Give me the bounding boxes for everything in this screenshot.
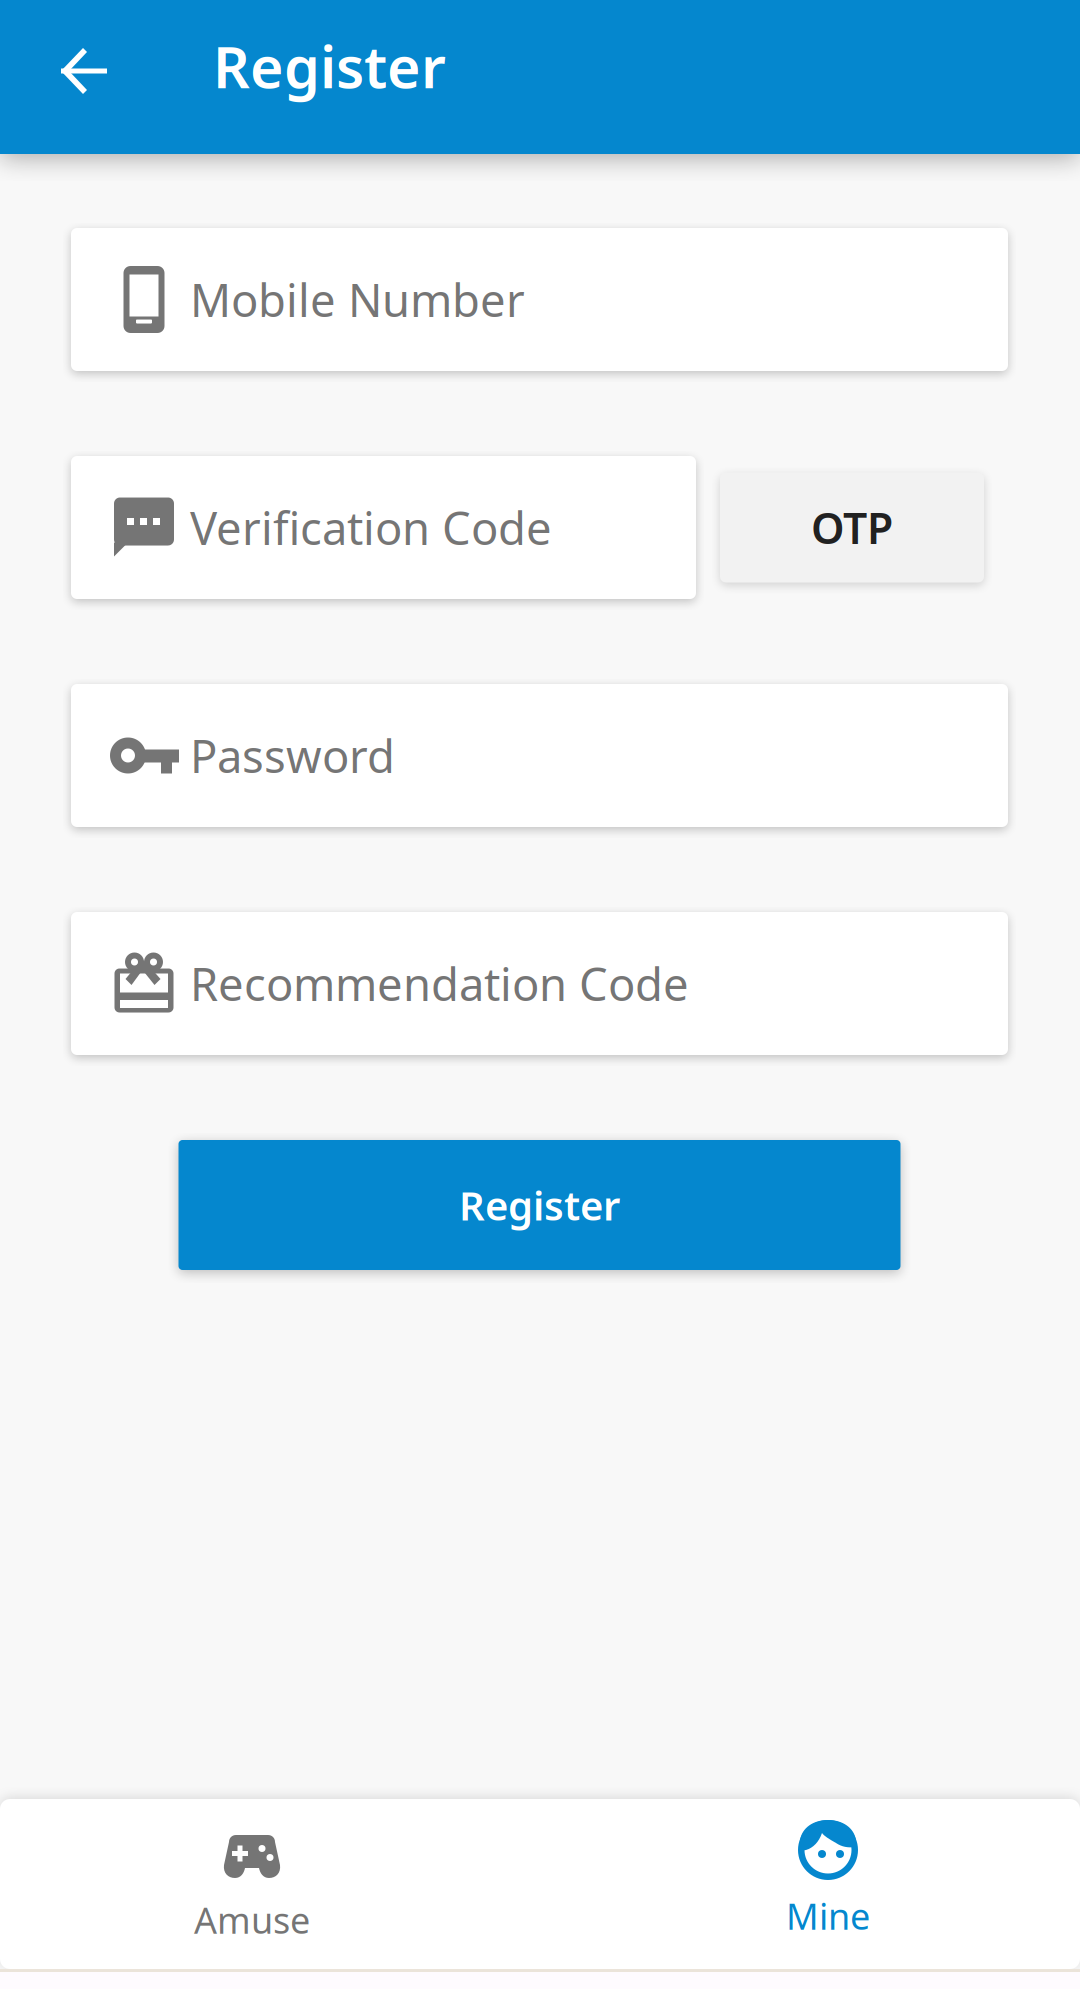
- staticText: OTP: [811, 499, 893, 556]
- button[interactable]: Back: [0, 0, 168, 142]
- staticText: Verification Code: [190, 497, 552, 558]
- staticText: Recommendation Code: [190, 953, 689, 1014]
- button[interactable]: Register: [178, 1140, 900, 1270]
- button[interactable]: Amuse: [0, 1799, 504, 1969]
- button[interactable]: OTP: [720, 472, 984, 582]
- staticText: Mobile Number: [190, 269, 525, 330]
- staticText: Password: [190, 725, 395, 786]
- staticText: Register: [213, 28, 446, 104]
- staticText: Mine: [786, 1892, 870, 1940]
- staticText: Amuse: [194, 1896, 310, 1944]
- button[interactable]: Mine: [576, 1799, 1080, 1969]
- staticText: Register: [459, 1178, 620, 1231]
